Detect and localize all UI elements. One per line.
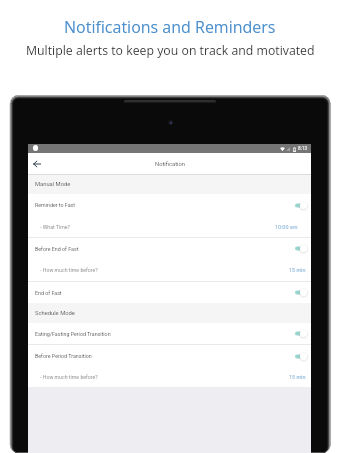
staticText: Notification	[155, 161, 185, 168]
staticText: 8:13	[298, 146, 308, 152]
staticText: 15 min	[289, 374, 306, 380]
staticText: Schedule Mode	[35, 310, 75, 317]
button[interactable]: Reminder to Fast	[28, 194, 311, 216]
staticText: - How much time before?	[40, 374, 98, 380]
staticText: Reminder to Fast	[35, 202, 76, 208]
other: Toggle	[295, 351, 307, 362]
staticText: Before End of Fast	[35, 246, 79, 252]
staticText: Multiple alerts to keep you on track and…	[26, 42, 315, 59]
staticText: 10:00 am	[275, 224, 298, 230]
staticText: Before Period Transition	[35, 353, 92, 359]
staticText: Eating/Fasting Period Transition	[35, 331, 111, 337]
staticText: - What Time?	[40, 224, 70, 230]
other: Toggle	[295, 328, 307, 339]
button[interactable]: Eating/Fasting Period Transition	[28, 323, 311, 344]
staticText: End of Fast	[35, 290, 62, 296]
other: Toggle	[295, 200, 307, 211]
button[interactable]: Back	[30, 157, 44, 171]
button[interactable]: Before Period Transition	[28, 345, 311, 367]
staticText: - How much time before?	[40, 267, 98, 273]
button[interactable]: - What Time?	[28, 216, 311, 237]
staticText: 15 min	[289, 267, 306, 273]
staticText: Notifications and Reminders	[64, 16, 276, 38]
other: Toggle	[295, 287, 307, 298]
other: Toggle	[295, 243, 307, 254]
button[interactable]: Before End of Fast	[28, 238, 311, 259]
staticText: Manual Mode	[35, 181, 71, 188]
button[interactable]: End of Fast	[28, 282, 311, 303]
button[interactable]: - How much time before?	[28, 367, 311, 387]
button[interactable]: - How much time before?	[28, 259, 311, 281]
